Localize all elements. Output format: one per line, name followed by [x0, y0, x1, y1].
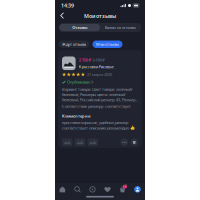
- button[interactable]: Profile: [130, 183, 145, 196]
- button[interactable]: Delete: [130, 138, 138, 146]
- button[interactable]: Review photo: [88, 139, 98, 146]
- staticText: 3 199 ₽: [92, 57, 104, 63]
- button[interactable]: Back: [58, 11, 67, 21]
- button[interactable]: Review photo: [75, 139, 85, 146]
- button[interactable]: Search: [70, 183, 85, 196]
- staticText: Мои отзывы: [84, 12, 116, 20]
- button[interactable]: Мои отзывы: [92, 40, 122, 48]
- button[interactable]: Ждут отзыва: [58, 40, 89, 48]
- staticText: 14:39: [61, 2, 74, 9]
- staticText: 17: [123, 185, 127, 188]
- button[interactable]: Review photo: [62, 139, 72, 146]
- button[interactable]: More options: [121, 138, 128, 146]
- staticText: кроссовки хорошие, удобные,размер соотве…: [62, 120, 135, 130]
- staticText: 21 марта 2025: [87, 72, 112, 77]
- staticText: Баллы за отзывы: [105, 25, 136, 30]
- staticText: Отзывы: [72, 25, 87, 30]
- button[interactable]: Cart: [115, 183, 130, 196]
- staticText: Вариант товара: Цвет товара: зелёный/беж…: [62, 86, 138, 102]
- staticText: Комментарии: [62, 113, 91, 118]
- staticText: Опубликован: [67, 79, 90, 85]
- staticText: Мои отзывы: [96, 42, 119, 47]
- button[interactable]: Отзывы: [59, 24, 100, 31]
- staticText: 2 750 ₽: [79, 57, 91, 63]
- staticText: Ждут отзыва: [62, 42, 86, 47]
- button[interactable]: Home: [55, 183, 70, 196]
- staticText: Кроссовки Рисовые: [79, 64, 114, 69]
- button[interactable]: Favorites: [100, 183, 115, 196]
- button[interactable]: Баллы за отзывы: [100, 24, 141, 31]
- button[interactable]: Catalog: [85, 183, 100, 196]
- button[interactable]: Опубликован: [62, 79, 138, 85]
- staticText: Соответствие размеру: соответствует: [62, 104, 131, 109]
